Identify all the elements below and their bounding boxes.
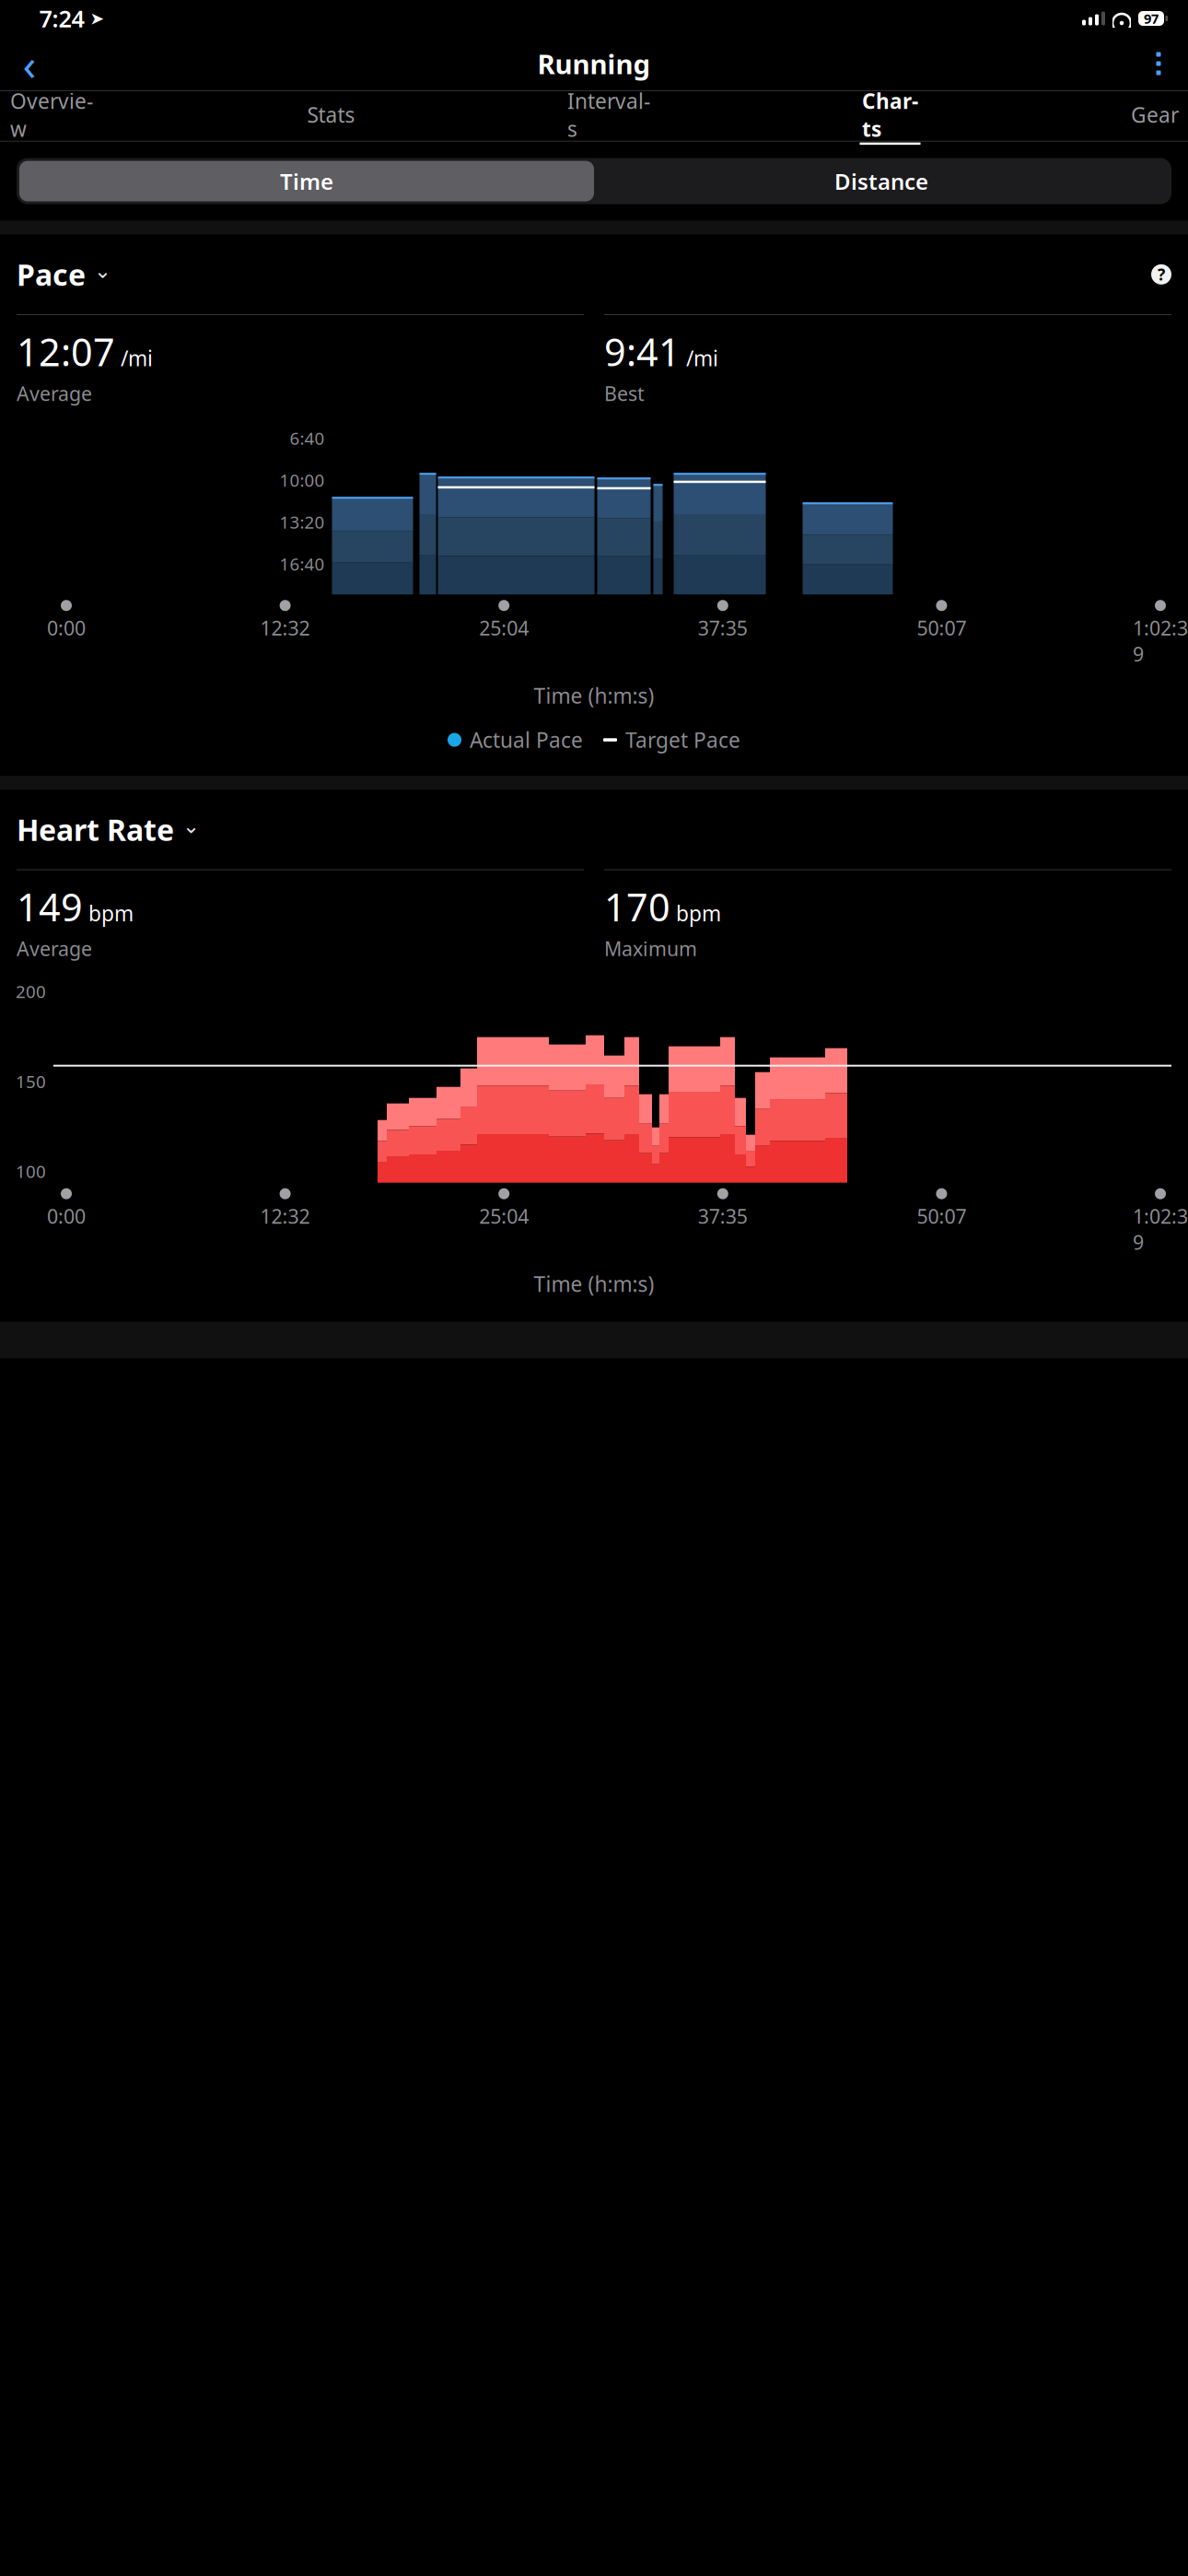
staticText: 0:00 xyxy=(47,615,86,641)
staticText: 170 xyxy=(604,881,670,932)
staticText: Actual Pace xyxy=(470,726,583,754)
button[interactable]: Heart Rate xyxy=(17,810,200,849)
staticText: Time (h:m:s) xyxy=(534,1270,654,1298)
button[interactable]: More options xyxy=(1135,43,1182,84)
staticText: 0:00 xyxy=(47,1203,86,1229)
staticText: Overview xyxy=(10,87,93,142)
staticText: 150 xyxy=(16,1070,46,1093)
staticText: 149 xyxy=(17,881,83,932)
staticText: Running xyxy=(537,46,651,82)
staticText: ⌄ xyxy=(182,814,200,838)
staticText: bpm xyxy=(676,899,721,927)
staticText: 7:24 xyxy=(39,3,84,34)
staticText: 12:07 xyxy=(17,326,115,377)
staticText: 50:07 xyxy=(917,1203,966,1229)
staticText: Average xyxy=(17,380,92,406)
staticText: 12:32 xyxy=(260,615,310,641)
staticText: Stats xyxy=(307,101,355,129)
staticText: ⌄ xyxy=(94,259,111,283)
staticText: Heart Rate xyxy=(17,810,174,849)
staticText: Best xyxy=(604,380,645,406)
button[interactable]: Stats xyxy=(303,91,360,141)
staticText: ‹ xyxy=(23,34,36,93)
staticText: 25:04 xyxy=(479,615,529,641)
button[interactable]: Distance xyxy=(594,161,1169,201)
button[interactable]: Pace xyxy=(17,255,111,294)
staticText: Charts xyxy=(862,87,918,142)
staticText: bpm xyxy=(88,899,134,927)
staticText: 100 xyxy=(16,1160,46,1183)
staticText: 200 xyxy=(16,980,46,1003)
button[interactable]: Charts xyxy=(858,91,922,141)
staticText: Time (h:m:s) xyxy=(534,682,654,709)
staticText: 13:20 xyxy=(280,511,325,533)
staticText: 9:41 xyxy=(604,326,681,377)
button[interactable]: Intervals xyxy=(566,91,651,141)
staticText: 1:02:39 xyxy=(1133,615,1188,667)
staticText: 12:32 xyxy=(260,1203,310,1229)
staticText: Target Pace xyxy=(625,726,740,754)
staticText: Average xyxy=(17,936,92,962)
staticText: /mi xyxy=(121,344,153,372)
button[interactable]: Help xyxy=(1151,264,1171,285)
button[interactable]: Time xyxy=(19,161,594,201)
staticText: 6:40 xyxy=(290,427,325,450)
staticText: Maximum xyxy=(604,936,697,962)
staticText: Pace xyxy=(17,255,86,294)
staticText: 10:00 xyxy=(280,469,325,492)
staticText: Gear xyxy=(1131,101,1179,129)
staticText: Distance xyxy=(834,166,928,196)
button[interactable]: Overview xyxy=(7,91,96,141)
staticText: ➤ xyxy=(90,9,105,28)
staticText: 50:07 xyxy=(917,615,966,641)
staticText: Time xyxy=(280,166,333,196)
staticText: 37:35 xyxy=(698,615,748,641)
staticText: 1:02:39 xyxy=(1133,1203,1188,1255)
button[interactable]: Back xyxy=(6,43,53,84)
staticText: 25:04 xyxy=(479,1203,529,1229)
button[interactable]: Gear xyxy=(1129,91,1181,141)
staticText: 16:40 xyxy=(280,553,325,575)
staticText: 37:35 xyxy=(698,1203,748,1229)
staticText: 97 xyxy=(1144,9,1159,27)
staticText: Intervals xyxy=(567,87,650,142)
staticText: /mi xyxy=(686,344,718,372)
staticText: ? xyxy=(1158,264,1165,285)
